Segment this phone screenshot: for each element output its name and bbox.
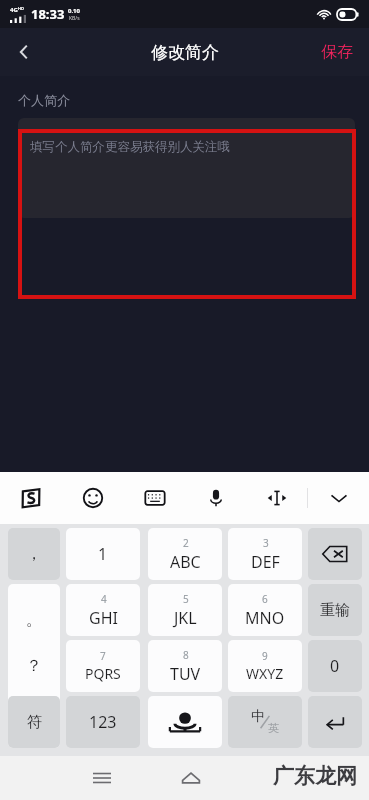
button[interactable]: 123: [66, 696, 140, 748]
staticText: 广东龙网: [273, 763, 357, 789]
staticText: ？: [26, 656, 42, 676]
staticText: 9: [262, 649, 268, 663]
staticText: 123: [89, 711, 117, 733]
staticText: 1: [98, 543, 108, 565]
button[interactable]: 6: [228, 584, 302, 636]
button[interactable]: 保存: [305, 28, 369, 76]
button[interactable]: Sogou input: [0, 472, 62, 524]
staticText: 4: [101, 592, 107, 606]
staticText: 0.10: [68, 7, 80, 15]
staticText: 5: [183, 592, 189, 606]
staticText: ABC: [170, 551, 201, 573]
staticText: 符: [27, 713, 42, 732]
staticText: 6: [262, 592, 268, 606]
button[interactable]: Move cursor: [246, 472, 307, 524]
button[interactable]: 7: [66, 640, 140, 692]
button[interactable]: 4: [66, 584, 140, 636]
staticText: 个人简介: [18, 92, 70, 108]
button[interactable]: Delete: [308, 528, 362, 580]
button[interactable]: Recent apps: [78, 756, 126, 800]
button[interactable]: Enter: [308, 696, 362, 748]
button[interactable]: Home: [167, 756, 215, 800]
staticText: 保存: [321, 42, 353, 62]
button[interactable]: 5: [148, 584, 222, 636]
button[interactable]: 1: [66, 528, 140, 580]
button[interactable]: Back: [0, 28, 48, 76]
staticText: 。: [26, 610, 42, 630]
staticText: 重输: [320, 601, 350, 620]
staticText: 2: [183, 536, 189, 550]
button[interactable]: 2: [148, 528, 222, 580]
staticText: MNO: [245, 607, 285, 629]
staticText: 中: [251, 708, 265, 726]
staticText: 8: [183, 648, 189, 662]
staticText: 修改简介: [151, 42, 219, 63]
staticText: 4G: [10, 6, 18, 14]
staticText: DEF: [251, 551, 280, 573]
staticText: 3: [263, 536, 269, 550]
button[interactable]: Hide keyboard: [308, 472, 369, 524]
button[interactable]: Switch Chinese English: [228, 696, 302, 748]
button[interactable]: 符: [8, 696, 60, 748]
staticText: ，: [26, 544, 42, 564]
staticText: GHI: [89, 607, 118, 629]
staticText: WXYZ: [246, 664, 284, 683]
staticText: ！: [26, 702, 42, 722]
button[interactable]: Emoji: [62, 472, 124, 524]
button[interactable]: 填写个人简介更容易获得别人关注哦: [18, 129, 356, 299]
button[interactable]: 。: [8, 584, 60, 748]
button[interactable]: Keyboard layout: [124, 472, 185, 524]
staticText: 英: [268, 721, 279, 735]
staticText: 填写个人简介更容易获得别人关注哦: [30, 139, 230, 155]
button[interactable]: 8: [148, 640, 222, 692]
button[interactable]: 重输: [308, 584, 362, 636]
staticText: TUV: [170, 663, 201, 685]
button[interactable]: 9: [228, 640, 302, 692]
staticText: 18:33: [31, 5, 65, 23]
staticText: KB/s: [69, 15, 80, 22]
button[interactable]: 3: [228, 528, 302, 580]
button[interactable]: 0: [308, 640, 362, 692]
staticText: 0: [330, 655, 340, 677]
staticText: HD: [18, 6, 24, 11]
staticText: 7: [100, 649, 106, 663]
button[interactable]: Voice input: [185, 472, 246, 524]
button[interactable]: ，: [8, 528, 60, 580]
staticText: PQRS: [85, 664, 121, 683]
button[interactable]: Space / voice input: [148, 696, 222, 748]
staticText: JKL: [174, 607, 197, 629]
